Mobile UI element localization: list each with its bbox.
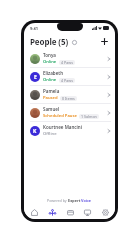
staticText: 9:41 xyxy=(30,26,38,31)
staticText: Voice xyxy=(81,198,92,203)
button[interactable]: People xyxy=(44,205,60,219)
button[interactable]: Home xyxy=(26,205,42,219)
staticText: 1 Salmon xyxy=(81,114,97,119)
staticText: Expert xyxy=(68,198,81,203)
staticText: 4 Paws xyxy=(61,60,73,65)
staticText: E xyxy=(34,74,37,81)
staticText: 4 Paws xyxy=(61,78,73,83)
staticText: Pamela xyxy=(43,88,60,94)
button[interactable]: Add person xyxy=(99,36,110,47)
staticText: People (5) xyxy=(30,36,69,47)
button[interactable]: Info xyxy=(71,39,77,45)
staticText: Paused xyxy=(43,95,58,101)
button[interactable]: Desktop xyxy=(79,205,95,219)
button[interactable]: Settings xyxy=(97,205,113,219)
staticText: Scheduled Pause xyxy=(43,113,77,119)
staticText: Online xyxy=(43,77,57,83)
staticText: Tonya xyxy=(43,52,56,58)
staticText: Offline xyxy=(43,131,57,137)
button[interactable]: Samuel xyxy=(24,104,115,121)
staticText: Kourtnee Mancini xyxy=(43,124,83,130)
staticText: K xyxy=(33,128,37,135)
staticText: Elizabeth xyxy=(43,70,64,76)
staticText: Online xyxy=(43,59,57,65)
button[interactable]: Pamela xyxy=(24,86,115,103)
button[interactable]: Inbox xyxy=(62,205,78,219)
staticText: Powered by xyxy=(47,198,68,203)
button[interactable]: E xyxy=(24,68,115,85)
staticText: Samuel xyxy=(43,106,60,112)
button[interactable]: Tonya xyxy=(24,50,115,67)
staticText: 0 Items xyxy=(62,96,75,101)
button[interactable]: K xyxy=(24,122,115,139)
